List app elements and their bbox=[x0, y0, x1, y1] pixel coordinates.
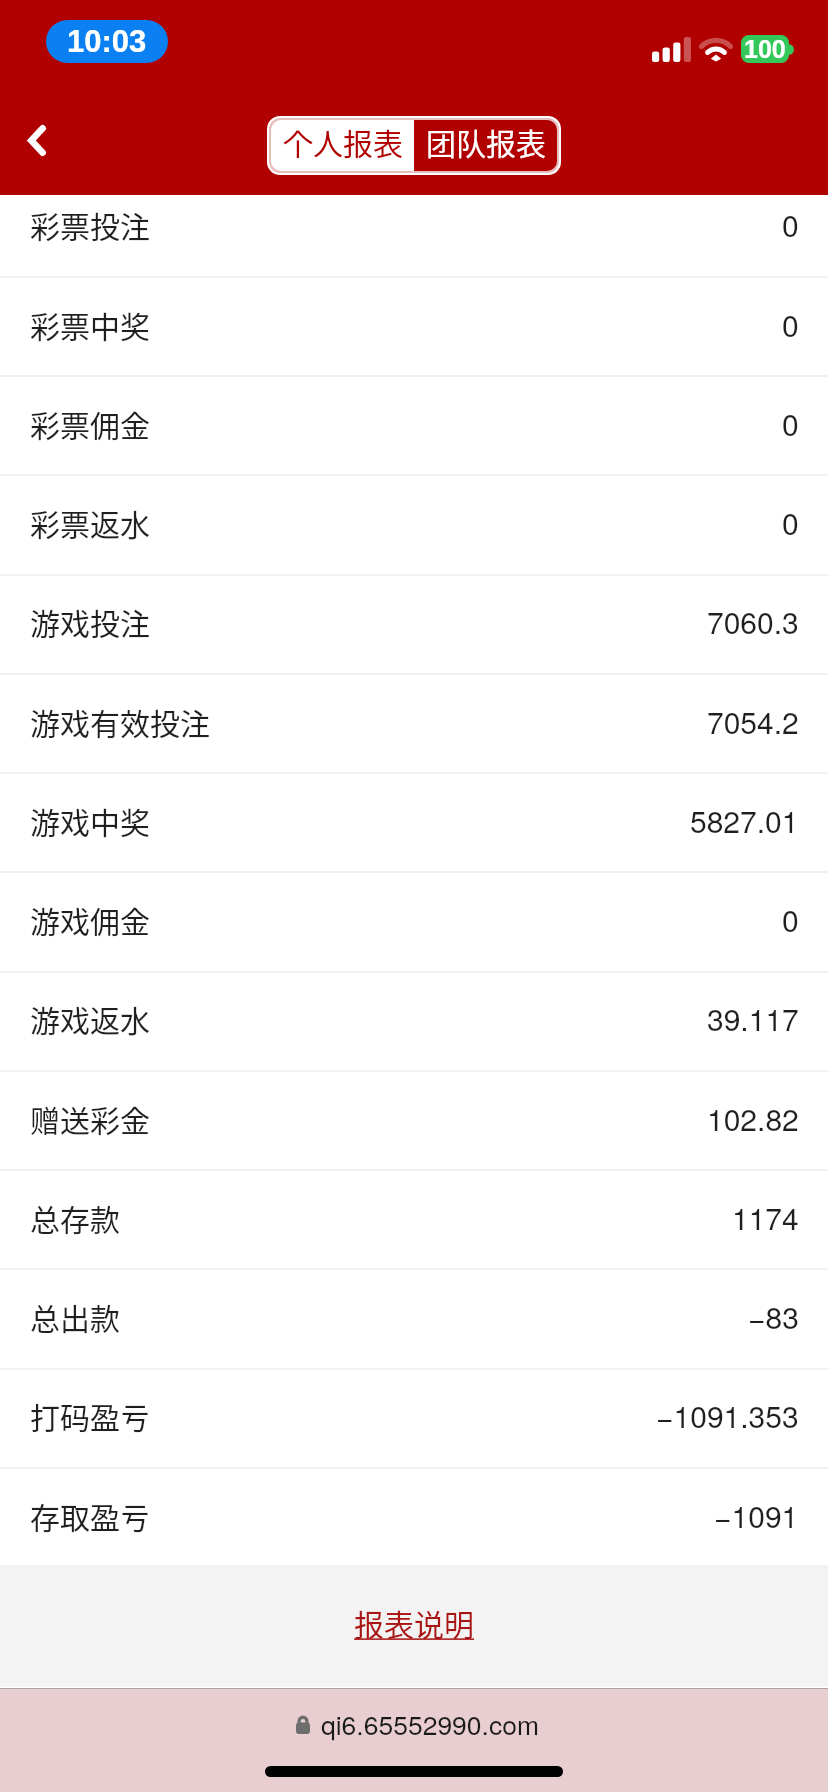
staticText: 0 bbox=[782, 402, 799, 445]
staticText: 游戏佣金 bbox=[30, 898, 150, 941]
staticText: 7054.2 bbox=[707, 700, 799, 743]
staticText: 5827.01 bbox=[690, 799, 799, 842]
staticText: −1091.353 bbox=[656, 1394, 799, 1437]
staticText: 游戏中奖 bbox=[30, 799, 150, 842]
staticText: 游戏有效投注 bbox=[30, 700, 210, 743]
button[interactable]: 报表说明 bbox=[340, 1593, 488, 1652]
staticText: 游戏投注 bbox=[30, 600, 150, 643]
button[interactable]: 彩票中奖 bbox=[0, 277, 828, 376]
staticText: 0 bbox=[782, 203, 799, 246]
staticText: 0 bbox=[782, 898, 799, 941]
staticText: 39.117 bbox=[707, 997, 799, 1040]
staticText: −83 bbox=[748, 1295, 799, 1338]
button[interactable]: 游戏投注 bbox=[0, 574, 828, 673]
button[interactable]: 彩票佣金 bbox=[0, 376, 828, 475]
staticText: qi6.65552990.com bbox=[321, 1705, 540, 1743]
button[interactable]: 个人报表 bbox=[271, 120, 414, 171]
staticText: 10:03 bbox=[67, 24, 147, 59]
button[interactable]: Back bbox=[1, 104, 73, 176]
staticText: 100 bbox=[744, 35, 786, 63]
staticText: 0 bbox=[782, 501, 799, 544]
button[interactable]: 游戏返水 bbox=[0, 971, 828, 1070]
button[interactable]: 赠送彩金 bbox=[0, 1071, 828, 1170]
staticText: 彩票投注 bbox=[30, 203, 150, 246]
staticText: −1091 bbox=[714, 1494, 799, 1537]
staticText: 游戏返水 bbox=[30, 997, 150, 1040]
staticText: 总存款 bbox=[30, 1196, 120, 1239]
staticText: 1174 bbox=[732, 1196, 799, 1239]
staticText: 打码盈亏 bbox=[30, 1394, 150, 1437]
staticText: 存取盈亏 bbox=[30, 1494, 150, 1537]
staticText: 彩票佣金 bbox=[30, 402, 150, 445]
button[interactable]: 游戏佣金 bbox=[0, 872, 828, 971]
staticText: 102.82 bbox=[707, 1097, 799, 1140]
button[interactable]: 总出款 bbox=[0, 1269, 828, 1368]
staticText: 彩票中奖 bbox=[30, 303, 150, 346]
button[interactable]: 团队报表 bbox=[414, 120, 557, 171]
button[interactable]: 打码盈亏 bbox=[0, 1368, 828, 1467]
button[interactable]: 总存款 bbox=[0, 1170, 828, 1269]
staticText: 7060.3 bbox=[707, 600, 799, 643]
button[interactable]: 游戏中奖 bbox=[0, 773, 828, 872]
button[interactable]: 彩票投注 bbox=[0, 177, 828, 276]
staticText: 团队报表 bbox=[426, 120, 546, 163]
button[interactable]: 彩票返水 bbox=[0, 475, 828, 574]
staticText: 0 bbox=[782, 303, 799, 346]
button[interactable]: 游戏有效投注 bbox=[0, 674, 828, 773]
staticText: 总出款 bbox=[30, 1295, 120, 1338]
button[interactable]: 存取盈亏 bbox=[0, 1468, 828, 1565]
staticText: 彩票返水 bbox=[30, 501, 150, 544]
staticText: 个人报表 bbox=[283, 120, 403, 163]
staticText: 报表说明 bbox=[354, 1601, 474, 1644]
staticText: 赠送彩金 bbox=[30, 1097, 150, 1140]
